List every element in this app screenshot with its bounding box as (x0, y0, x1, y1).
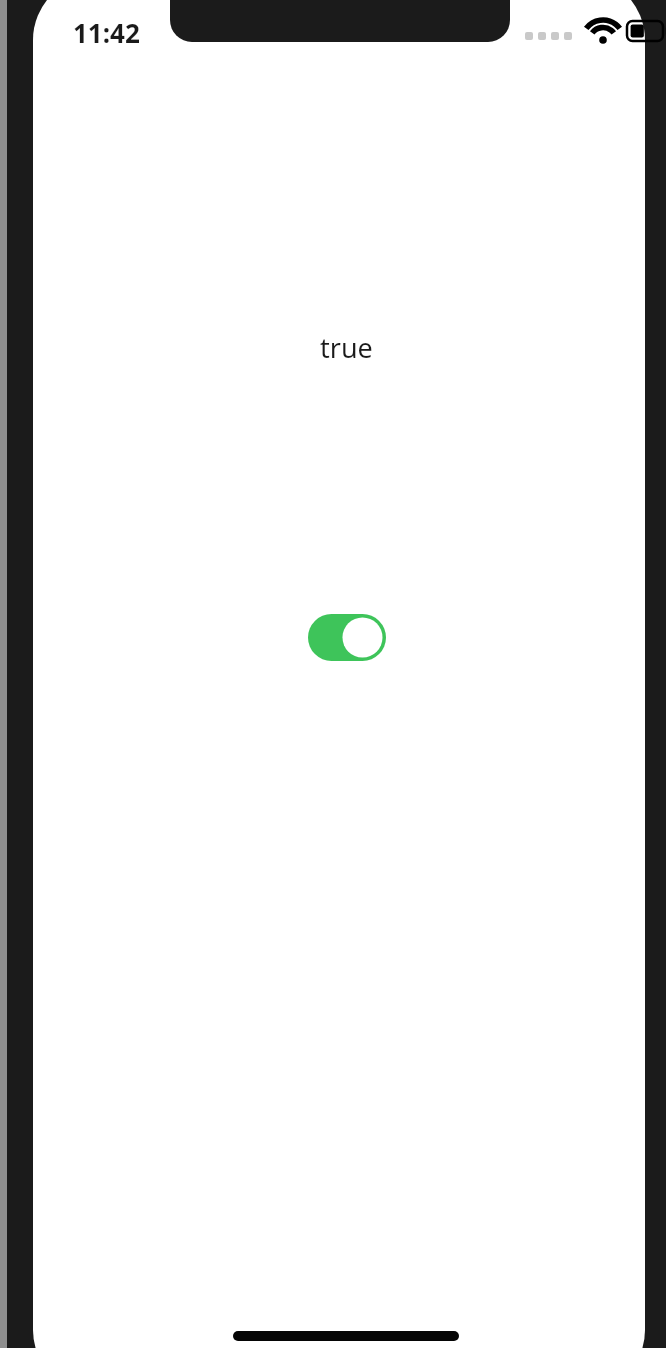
staticText: 11:42 (73, 15, 140, 50)
staticText: true (320, 329, 373, 366)
button[interactable]: Toggle switch, on (308, 614, 386, 661)
